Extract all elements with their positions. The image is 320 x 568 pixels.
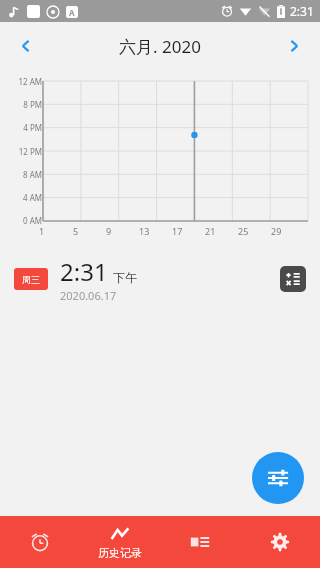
staticText: 17 — [172, 225, 183, 237]
staticText: 21 — [205, 225, 216, 237]
button[interactable]: Next month — [276, 28, 312, 64]
staticText: 13 — [139, 225, 150, 237]
button[interactable]: Settings tune — [252, 452, 304, 504]
staticText: 周三 — [22, 274, 40, 285]
staticText: 1 — [39, 225, 45, 237]
button[interactable]: Settings — [240, 516, 320, 568]
staticText: 29 — [271, 225, 282, 237]
staticText: 4 AM — [22, 192, 42, 203]
staticText: A — [69, 7, 75, 18]
staticText: 8 AM — [22, 169, 42, 180]
button[interactable]: 周三 — [0, 248, 320, 310]
button[interactable]: Alarm — [0, 516, 80, 568]
staticText: 六月. 2020 — [119, 35, 201, 58]
button[interactable]: Records — [160, 516, 240, 568]
staticText: 历史记录 — [98, 546, 142, 560]
staticText: 12 AM — [18, 76, 42, 87]
staticText: 8 PM — [23, 99, 42, 110]
staticText: 4 PM — [23, 122, 42, 133]
staticText: 0 AM — [22, 215, 42, 226]
staticText: 5 — [73, 225, 79, 237]
staticText: 下午 — [113, 270, 137, 285]
staticText: 2:31 — [290, 3, 314, 19]
staticText: 12 PM — [18, 146, 42, 157]
staticText: 2:31 — [60, 255, 108, 288]
staticText: 25 — [238, 225, 249, 237]
button[interactable]: 历史记录 — [80, 516, 160, 568]
button[interactable]: Previous month — [8, 28, 44, 64]
staticText: 9 — [106, 225, 112, 237]
button[interactable]: Calculate — [280, 266, 306, 292]
staticText: 2020.06.17 — [60, 288, 117, 303]
